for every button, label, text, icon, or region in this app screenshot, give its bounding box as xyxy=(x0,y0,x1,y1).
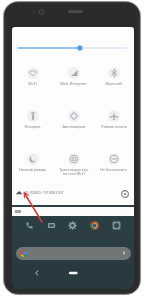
staticText: 4G (SIM2): 1910081001 xyxy=(24,190,64,195)
staticText: Bluetooth xyxy=(105,81,123,86)
button[interactable]: Wi-Fi xyxy=(13,67,52,86)
button[interactable]: Search xyxy=(16,247,131,260)
button[interactable]: Режим полета xyxy=(94,110,133,129)
button[interactable]: Автоповорот xyxy=(54,110,93,129)
button[interactable]: Bluetooth xyxy=(94,67,133,86)
button[interactable]: Трансляция экр. на сети Wi-Fi xyxy=(54,153,93,176)
button[interactable]: Chrome xyxy=(90,221,99,230)
button[interactable]: Фонарик xyxy=(13,110,52,129)
staticText: Моб. Интернет xyxy=(60,81,87,86)
button[interactable]: Phone xyxy=(25,221,34,230)
button[interactable]: Моб. Интернет xyxy=(54,67,93,86)
button[interactable]: Settings xyxy=(68,221,77,230)
button[interactable]: Не беспокоить xyxy=(94,153,133,172)
button[interactable]: Messages xyxy=(47,221,56,230)
button[interactable]: Camera xyxy=(112,221,121,230)
staticText: Режим полета xyxy=(101,124,127,129)
staticText: Автоповорот xyxy=(62,124,86,129)
button[interactable]: Ночной режим xyxy=(13,153,52,172)
staticText: Wi-Fi xyxy=(28,81,37,86)
staticText: Не беспокоить xyxy=(100,167,127,172)
button[interactable]: Settings xyxy=(121,190,129,198)
staticText: Ночной режим xyxy=(19,167,46,172)
staticText: Фонарик xyxy=(24,124,41,129)
staticText: Трансляция экр. на сети Wi-Fi xyxy=(59,167,89,176)
button[interactable]: Back xyxy=(32,268,42,278)
button[interactable]: Home xyxy=(68,268,79,278)
